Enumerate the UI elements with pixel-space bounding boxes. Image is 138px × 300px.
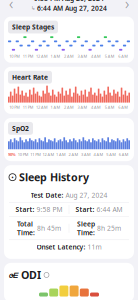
staticText: 90% — [8, 152, 16, 157]
staticText: 2 AM — [64, 53, 74, 59]
staticText: 4 AM — [91, 53, 101, 59]
staticText: 2 AM — [68, 152, 78, 157]
staticText: 12 AM — [36, 53, 48, 59]
staticText: 11 PM — [30, 152, 41, 157]
staticText: 5 AM — [105, 105, 115, 110]
staticText: 5 AM — [105, 53, 115, 59]
staticText: 2 AM — [64, 105, 74, 110]
staticText: 6:44 AM Aug 27, 2024 — [37, 4, 107, 13]
staticText: 4 AM — [91, 105, 101, 110]
staticText: Onset Latency: — [36, 242, 85, 251]
button[interactable]: Previous session — [3, 0, 19, 12]
staticText: 12 AM — [42, 152, 54, 157]
staticText: Start: — [76, 205, 95, 214]
staticText: Start: — [15, 205, 34, 214]
staticText: 6 AM — [119, 152, 129, 157]
staticText: ODI — [21, 268, 41, 282]
staticText: 1 AM — [56, 152, 66, 157]
staticText: Sleep Stages — [12, 23, 54, 31]
staticText: 12 AM — [36, 105, 48, 110]
staticText: 10 PM — [18, 152, 29, 157]
staticText: • — [11, 174, 13, 181]
staticText: SpO2 — [12, 124, 29, 133]
staticText: 8h 25m — [97, 224, 121, 233]
staticText: 11m — [87, 242, 101, 251]
staticText: ‹ — [9, 0, 13, 14]
staticText: Heart Rate — [12, 73, 48, 82]
staticText: Sleep Time: — [77, 219, 95, 237]
staticText: 6 AM — [118, 105, 128, 110]
staticText: › — [125, 0, 129, 14]
staticText: 8h 45m — [37, 224, 61, 233]
staticText: ↳ — [31, 5, 35, 11]
staticText: 3 AM — [81, 152, 91, 157]
staticText: 3 AM — [78, 105, 88, 110]
staticText: 10 PM — [9, 105, 20, 110]
staticText: 6:44 AM — [97, 205, 123, 214]
button[interactable]: Next session — [119, 0, 135, 12]
staticText: 1 AM — [50, 53, 60, 59]
staticText: 𝑜̵𝐸 — [9, 270, 18, 280]
staticText: 11 PM — [23, 53, 34, 59]
staticText: 9:58 PM — [36, 205, 62, 214]
staticText: 10 PM — [9, 53, 20, 59]
staticText: 9:58 PM Aug 26, 2024 — [34, 0, 104, 3]
staticText: Aug 27, 2024 — [65, 191, 107, 200]
staticText: 6 AM — [118, 53, 128, 59]
staticText: 4 AM — [94, 152, 104, 157]
staticText: 5 AM — [106, 152, 116, 157]
staticText: Sleep History — [19, 170, 89, 184]
staticText: Test Date: — [30, 191, 63, 200]
staticText: 3 AM — [78, 53, 88, 59]
staticText: 11 PM — [23, 105, 34, 110]
staticText: Total Time: — [17, 219, 35, 237]
staticText: 1 AM — [50, 105, 60, 110]
